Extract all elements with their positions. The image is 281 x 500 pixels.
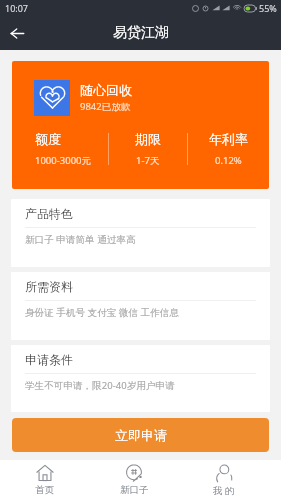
staticText: 易贷江湖 [113, 24, 169, 42]
button[interactable]: 产品特色 [11, 199, 270, 267]
staticText: 产品特色 [25, 206, 73, 221]
staticText: 我 的 [213, 484, 235, 497]
staticText: 年利率 [209, 131, 248, 147]
staticText: 1-7天 [136, 154, 160, 167]
staticText: 新口子 申请简单 通过率高 [25, 233, 136, 246]
staticText: 55% [259, 2, 277, 14]
button[interactable]: 立即申请 [12, 418, 269, 452]
staticText: 期限 [135, 131, 161, 147]
staticText: 身份证 手机号 支付宝 微信 工作信息 [25, 306, 179, 319]
staticText: 立即申请 [115, 427, 167, 443]
staticText: 申请条件 [25, 352, 73, 367]
staticText: 额度 [35, 131, 61, 147]
staticText: 新口子 [120, 484, 149, 496]
staticText: 首页 [35, 484, 54, 496]
staticText: 0.12% [215, 154, 242, 167]
button[interactable]: Back [0, 16, 34, 50]
staticText: 随心回收 [80, 82, 132, 98]
staticText: 9842已放款 [80, 100, 131, 113]
button[interactable]: 所需资料 [11, 272, 270, 340]
button[interactable]: 我 的 [179, 460, 269, 500]
staticText: 学生不可申请，限20-40岁用户申请 [25, 379, 175, 392]
staticText: 10:07 [5, 2, 29, 14]
button[interactable]: 随心回收 [12, 61, 269, 189]
staticText: 1000-3000元 [35, 154, 92, 167]
button[interactable]: 新口子 [89, 460, 179, 500]
staticText: 所需资料 [25, 279, 73, 294]
button[interactable]: 申请条件 [11, 345, 270, 412]
button[interactable]: 首页 [0, 460, 89, 500]
